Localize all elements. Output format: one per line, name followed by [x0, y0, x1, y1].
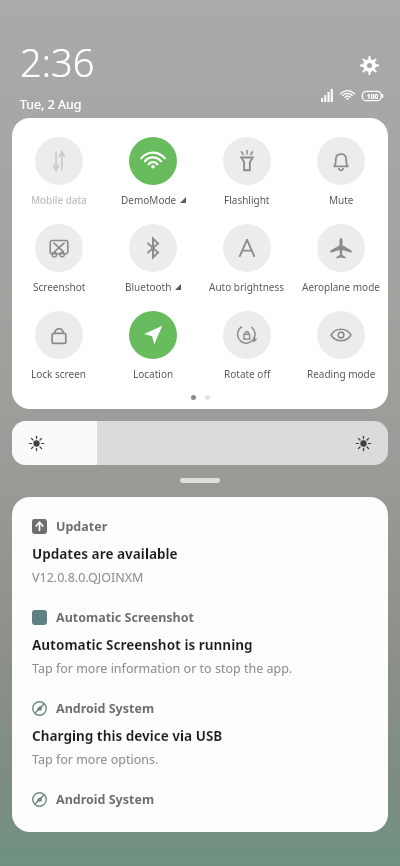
button[interactable]: Aeroplane mode [294, 224, 388, 294]
button[interactable]: Automatic Screenshot [32, 609, 368, 677]
staticText: 2:36 [20, 36, 95, 88]
staticText: Updates are available [32, 545, 178, 563]
staticText: Screenshot [33, 280, 86, 294]
staticText: DemoMode [121, 193, 177, 207]
button[interactable]: Mobile data [12, 137, 106, 207]
button[interactable]: Updater [32, 518, 368, 586]
button[interactable]: Settings [356, 52, 382, 78]
staticText: Location [133, 367, 174, 381]
staticText: Aeroplane mode [302, 280, 380, 294]
staticText: Android System [56, 791, 155, 808]
button[interactable]: Screenshot [12, 224, 106, 294]
button[interactable]: Expand notifications [180, 478, 220, 483]
button[interactable]: Location [106, 311, 200, 381]
button[interactable]: Brightness [12, 421, 388, 465]
staticText: Flashlight [224, 193, 270, 207]
staticText: Tap for more information or to stop the … [32, 660, 293, 677]
staticText: Tap for more options. [32, 751, 159, 768]
staticText: Automatic Screenshot is running [32, 636, 253, 654]
button[interactable]: Lock screen [12, 311, 106, 381]
staticText: Reading mode [307, 367, 376, 381]
staticText: Mobile data [31, 193, 87, 207]
staticText: Charging this device via USB [32, 727, 223, 745]
button[interactable]: Mute [294, 137, 388, 207]
button[interactable]: Reading mode [294, 311, 388, 381]
staticText: V12.0.8.0.QJOINXM [32, 569, 144, 586]
button[interactable]: Flashlight [200, 137, 294, 207]
staticText: Mute [329, 193, 354, 207]
button[interactable]: Auto brightness [200, 224, 294, 294]
button[interactable]: Android System [32, 700, 368, 768]
button[interactable]: Rotate off [200, 311, 294, 381]
button[interactable]: Android System [32, 791, 368, 808]
button[interactable]: DemoMode [106, 137, 200, 207]
button[interactable]: Bluetooth [106, 224, 200, 294]
staticText: Updater [56, 518, 108, 535]
staticText: Auto brightness [209, 280, 285, 294]
staticText: Rotate off [224, 367, 271, 381]
staticText: Lock screen [31, 367, 87, 381]
staticText: Automatic Screenshot [56, 609, 194, 626]
staticText: 100 [367, 92, 379, 101]
staticText: Tue, 2 Aug [20, 96, 82, 113]
staticText: Bluetooth [125, 280, 172, 294]
staticText: Android System [56, 700, 155, 717]
